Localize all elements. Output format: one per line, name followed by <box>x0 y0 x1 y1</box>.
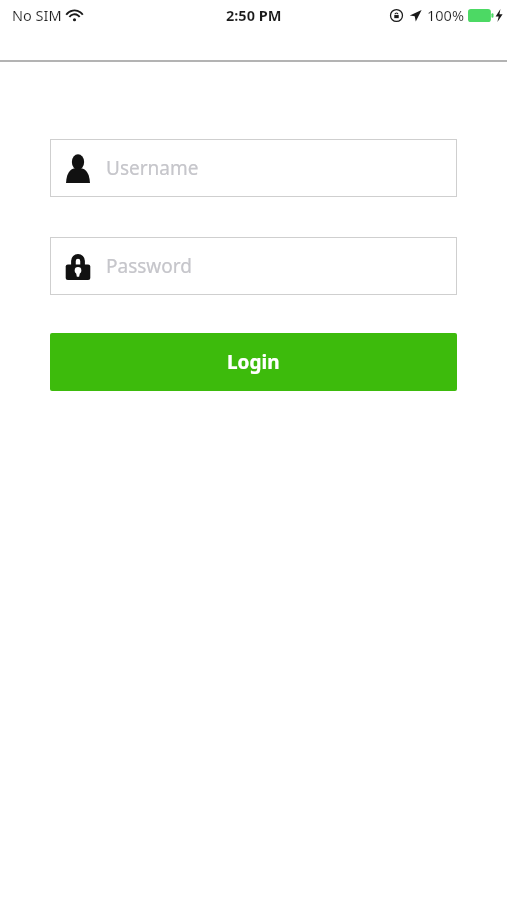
staticText: Username <box>106 155 199 181</box>
staticText: 100% <box>427 5 464 25</box>
button[interactable]: Login <box>50 333 457 391</box>
button[interactable]: Username <box>50 139 457 197</box>
staticText: No SIM <box>12 5 62 25</box>
staticText: Login <box>227 349 280 375</box>
staticText: Password <box>106 253 192 279</box>
other: Password <box>63 251 93 281</box>
staticText: 2:50 PM <box>226 5 282 25</box>
other: Username <box>63 153 93 183</box>
button[interactable]: Password <box>50 237 457 295</box>
